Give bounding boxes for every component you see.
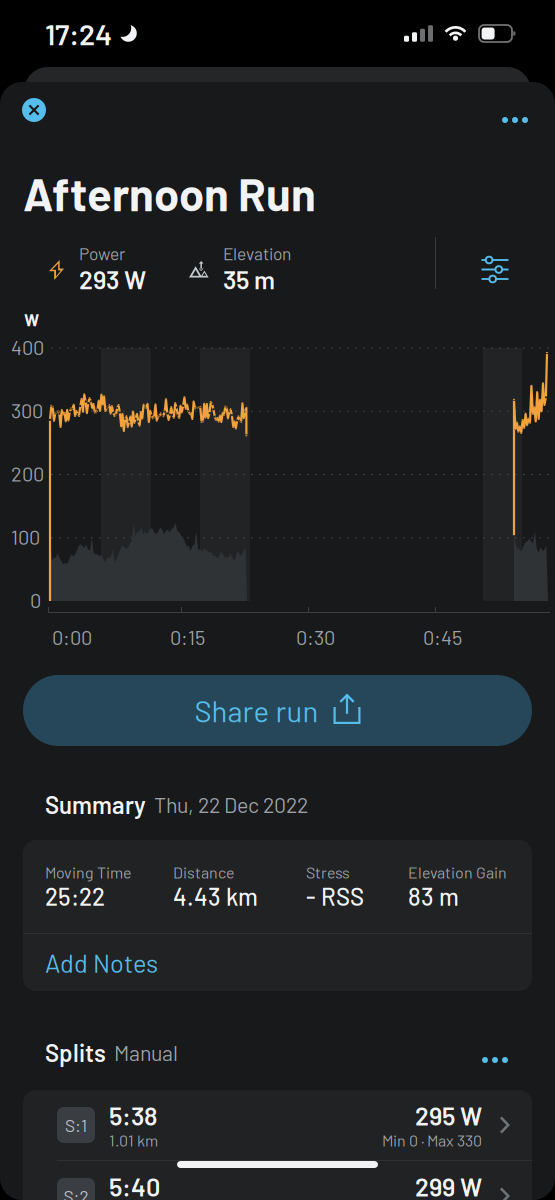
staticText: 200 [11,461,44,485]
staticText: - RSS [306,882,364,910]
staticText: Elevation Gain [408,862,507,882]
staticText: 4.43 km [173,882,258,910]
staticText: Distance [173,862,235,882]
staticText: 0 [30,588,41,612]
staticText: 295 W [415,1100,482,1131]
button[interactable]: Chart settings [466,246,524,294]
staticText: Moving Time [45,862,132,882]
button[interactable]: Add Notes [23,934,532,991]
staticText: S:2 [63,1186,88,1200]
staticText: Stress [306,862,350,882]
staticText: 25:22 [45,882,105,910]
staticText: 300 [11,398,43,422]
staticText: 400 [11,335,44,359]
staticText: Manual [114,1040,178,1065]
staticText: 100 [11,525,40,549]
staticText: Thu, 22 Dec 2022 [154,792,308,817]
staticText: 0:00 [52,625,92,649]
staticText: Splits [45,1038,106,1067]
staticText: 0:30 [296,625,335,649]
staticText: 0:15 [170,625,205,649]
staticText: 0:45 [423,625,462,649]
staticText: 1.01 km [109,1131,158,1150]
staticText: Share run [194,693,318,728]
staticText: Afternoon Run [23,166,316,220]
staticText: 83 m [408,882,459,910]
staticText: 35 m [223,264,275,294]
staticText: 5:38 [109,1100,158,1131]
staticText: Summary [45,790,146,819]
button[interactable]: S:2 [23,1161,532,1200]
staticText: 299 W [415,1171,482,1200]
staticText: 17:24 [45,16,112,51]
staticText: 5:40 [109,1171,160,1200]
staticText: Min 0 · Max 330 [382,1131,482,1150]
button[interactable]: Close [7,87,61,133]
staticText: Elevation [223,243,291,264]
staticText: Power [79,243,125,264]
staticText: Add Notes [45,947,158,978]
staticText: S:1 [65,1115,87,1135]
button[interactable]: Splits options [464,1040,526,1080]
button[interactable]: S:1 [23,1090,532,1160]
staticText: 293 W [79,264,146,294]
button[interactable]: Share run [23,675,532,746]
button[interactable]: More options [484,97,546,143]
staticText: W [24,309,39,330]
